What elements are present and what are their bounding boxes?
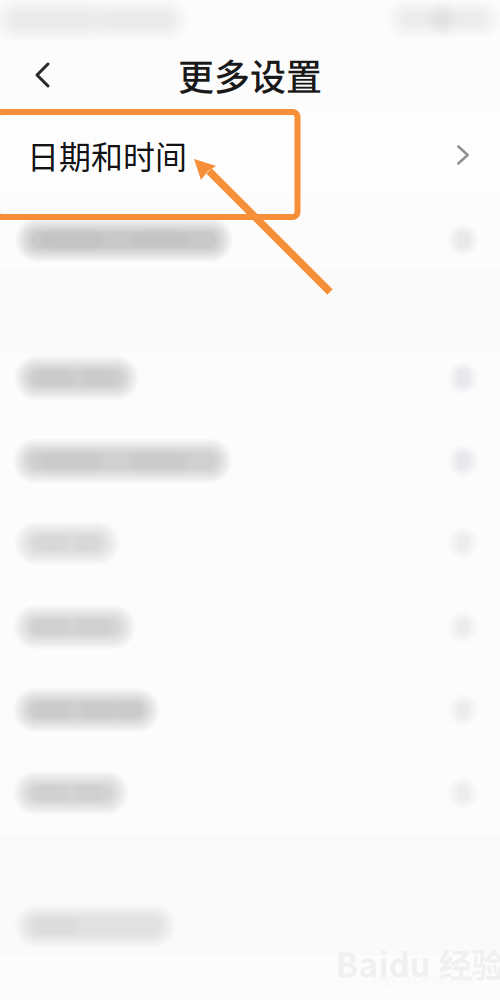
staticText: 日期和时间 (27, 132, 187, 178)
button[interactable]: 日期和时间 (0, 0, 500, 1000)
staticText: Baidu 经验 (335, 939, 500, 987)
staticText: 更多设置 (178, 49, 322, 101)
staticText: jingyan.baidu.com (370, 972, 473, 986)
button[interactable]: Back (0, 0, 500, 1000)
